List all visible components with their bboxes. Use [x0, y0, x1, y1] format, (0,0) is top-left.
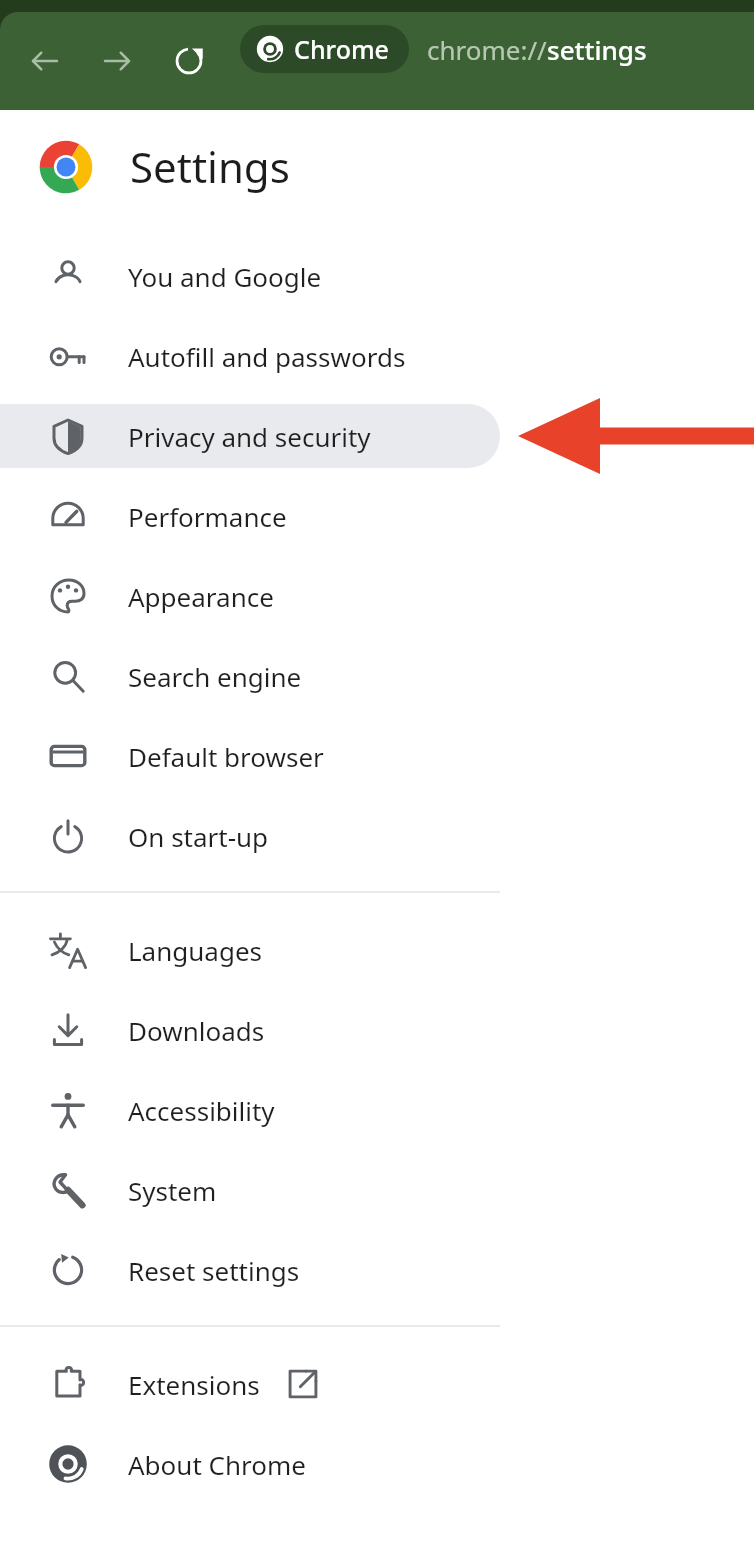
- staticText: Appearance: [128, 579, 274, 614]
- button[interactable]: About Chrome: [0, 1432, 500, 1496]
- staticText: Languages: [128, 933, 263, 968]
- button[interactable]: Extensions: [0, 1352, 500, 1416]
- staticText: Default browser: [128, 739, 324, 774]
- staticText: Autofill and passwords: [128, 339, 406, 374]
- staticText: Chrome: [294, 32, 389, 66]
- staticText: System: [128, 1173, 217, 1208]
- button[interactable]: Reload: [166, 38, 212, 84]
- button[interactable]: Back: [22, 38, 68, 84]
- button[interactable]: Chrome: [240, 25, 754, 73]
- staticText: settings: [547, 32, 647, 67]
- staticText: chrome://: [427, 32, 547, 67]
- staticText: Search engine: [128, 659, 302, 694]
- button[interactable]: Languages: [0, 918, 500, 982]
- staticText: Downloads: [128, 1013, 265, 1048]
- button[interactable]: Forward: [94, 38, 140, 84]
- button[interactable]: Default browser: [0, 724, 500, 788]
- staticText: Performance: [128, 499, 287, 534]
- button[interactable]: System: [0, 1158, 500, 1222]
- button[interactable]: Accessibility: [0, 1078, 500, 1142]
- staticText: On start-up: [128, 819, 269, 854]
- button[interactable]: On start-up: [0, 804, 500, 868]
- staticText: Extensions: [128, 1367, 260, 1402]
- button[interactable]: Search engine: [0, 644, 500, 708]
- staticText: Privacy and security: [128, 419, 371, 454]
- button[interactable]: Appearance: [0, 564, 500, 628]
- button[interactable]: Downloads: [0, 998, 500, 1062]
- staticText: You and Google: [128, 259, 322, 294]
- staticText: About Chrome: [128, 1447, 306, 1482]
- button[interactable]: Performance: [0, 484, 500, 548]
- staticText: Accessibility: [128, 1093, 275, 1128]
- staticText: Reset settings: [128, 1253, 300, 1288]
- button[interactable]: Privacy and security: [0, 404, 500, 468]
- button[interactable]: Reset settings: [0, 1238, 500, 1302]
- button[interactable]: You and Google: [0, 244, 500, 308]
- button[interactable]: Autofill and passwords: [0, 324, 500, 388]
- staticText: Settings: [130, 138, 290, 195]
